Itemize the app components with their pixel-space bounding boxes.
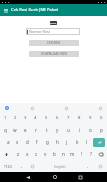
- staticText: a: [7, 139, 10, 145]
- staticText: !: [81, 151, 83, 157]
- button[interactable]: h: [52, 136, 62, 148]
- button[interactable]: CEK RESI: [29, 40, 79, 46]
- button[interactable]: Emoji: [27, 160, 38, 172]
- staticText: 1: [4, 115, 7, 121]
- staticText: w: [13, 127, 17, 133]
- staticText: .: [87, 163, 89, 169]
- button[interactable]: 8: [74, 112, 85, 124]
- staticText: 9: [89, 115, 92, 121]
- staticText: ,: [21, 163, 23, 169]
- button[interactable]: Backspace: [95, 148, 107, 160]
- button[interactable]: g: [42, 136, 52, 148]
- button[interactable]: Menu: [0, 5, 11, 16]
- button[interactable]: k: [72, 136, 82, 148]
- staticText: m: [70, 151, 75, 157]
- button[interactable]: d: [22, 136, 32, 148]
- button[interactable]: r: [30, 124, 41, 136]
- staticText: 5: [45, 115, 48, 121]
- button[interactable]: ?: [86, 148, 95, 160]
- staticText: PASTE: [50, 22, 57, 25]
- staticText: r: [35, 127, 37, 133]
- button[interactable]: a: [4, 136, 13, 148]
- button[interactable]: q: [0, 124, 10, 136]
- staticText: English: [54, 164, 66, 169]
- button[interactable]: 6: [52, 112, 63, 124]
- staticText: s: [16, 139, 19, 145]
- button[interactable]: o: [85, 124, 96, 136]
- staticText: k: [76, 139, 79, 145]
- button[interactable]: j: [62, 136, 72, 148]
- staticText: t: [46, 127, 48, 133]
- staticText: g: [46, 139, 49, 145]
- staticText: y: [56, 127, 59, 133]
- button[interactable]: 1: [0, 112, 10, 124]
- button[interactable]: i: [74, 124, 85, 136]
- staticText: o: [89, 127, 92, 133]
- button[interactable]: 2: [10, 112, 20, 124]
- staticText: f: [36, 139, 38, 145]
- button[interactable]: Settings: [63, 105, 69, 111]
- button[interactable]: DOWNLOAD RESI: [29, 51, 79, 57]
- staticText: 8: [78, 115, 81, 121]
- staticText: 3: [24, 115, 27, 121]
- button[interactable]: .: [82, 160, 93, 172]
- staticText: b: [53, 151, 56, 157]
- button[interactable]: English: [38, 160, 82, 172]
- button[interactable]: 7: [63, 112, 74, 124]
- button[interactable]: More: [97, 105, 103, 111]
- button[interactable]: f: [32, 136, 42, 148]
- button[interactable]: ?123: [0, 160, 16, 172]
- button[interactable]: PASTE: [50, 21, 57, 25]
- button[interactable]: Back: [21, 172, 35, 182]
- staticText: e: [24, 127, 27, 133]
- button[interactable]: Voice input: [93, 160, 107, 172]
- staticText: x: [26, 151, 29, 157]
- staticText: CEK RESI: [47, 41, 61, 45]
- button[interactable]: Stickers: [29, 105, 35, 111]
- button[interactable]: Shift: [0, 148, 13, 160]
- button[interactable]: 9: [85, 112, 96, 124]
- button[interactable]: 5: [41, 112, 52, 124]
- button[interactable]: l: [82, 136, 92, 148]
- button[interactable]: b: [50, 148, 59, 160]
- button[interactable]: v: [41, 148, 50, 160]
- button[interactable]: z: [13, 148, 23, 160]
- staticText: q: [4, 127, 7, 133]
- staticText: l: [86, 139, 88, 145]
- button[interactable]: x: [23, 148, 32, 160]
- button[interactable]: ,: [16, 160, 27, 172]
- staticText: z: [17, 151, 20, 157]
- button[interactable]: Google: [4, 105, 10, 111]
- staticText: u: [67, 127, 70, 133]
- staticText: ?123: [4, 164, 12, 169]
- button[interactable]: w: [10, 124, 20, 136]
- button[interactable]: !: [77, 148, 86, 160]
- button[interactable]: n: [59, 148, 68, 160]
- staticText: p: [100, 127, 103, 133]
- staticText: i: [79, 127, 81, 133]
- button[interactable]: Home: [48, 172, 61, 182]
- button[interactable]: Enter: [93, 138, 105, 147]
- button[interactable]: y: [52, 124, 63, 136]
- staticText: h: [56, 139, 59, 145]
- staticText: n: [62, 151, 65, 157]
- button[interactable]: 0: [96, 112, 107, 124]
- button[interactable]: s: [13, 136, 22, 148]
- staticText: Nomor Resi: [29, 29, 50, 34]
- staticText: 0: [100, 115, 103, 121]
- staticText: d: [26, 139, 29, 145]
- button[interactable]: p: [96, 124, 107, 136]
- button[interactable]: u: [63, 124, 74, 136]
- button[interactable]: e: [20, 124, 30, 136]
- staticText: 7: [67, 115, 70, 121]
- button[interactable]: 4: [30, 112, 41, 124]
- button[interactable]: 3: [20, 112, 30, 124]
- staticText: 6: [56, 115, 59, 121]
- staticText: 4: [34, 115, 37, 121]
- button[interactable]: t: [41, 124, 52, 136]
- button[interactable]: c: [32, 148, 41, 160]
- button[interactable]: m: [68, 148, 77, 160]
- staticText: Cek Resi Kurir JNE Paket: [11, 7, 59, 13]
- button[interactable]: Recents: [74, 172, 87, 182]
- button[interactable]: Nomor Resi: [26, 28, 80, 35]
